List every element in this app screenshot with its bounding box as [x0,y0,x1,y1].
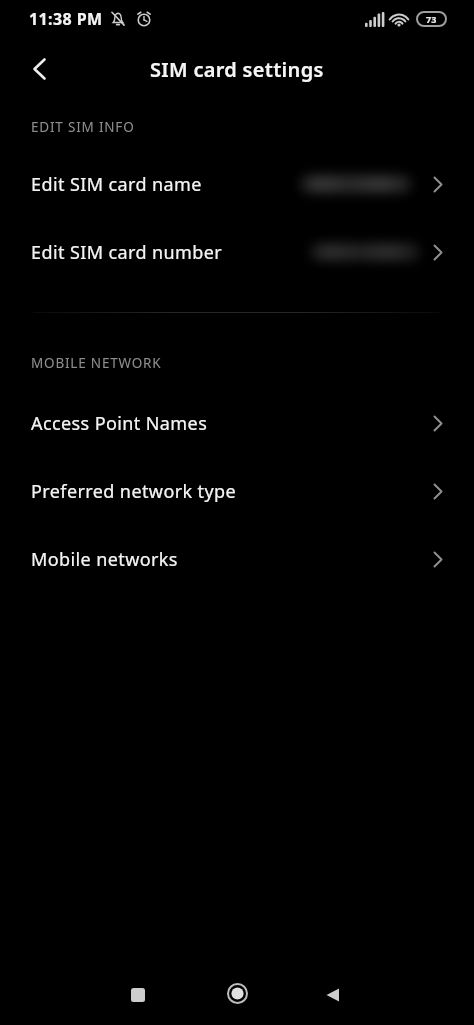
button[interactable] [24,54,54,84]
staticText: Preferred network type [31,479,237,504]
button[interactable]: Edit SIM card number [0,218,474,286]
staticText: SIM card settings [150,56,324,83]
staticText: MOBILE NETWORK [31,354,162,372]
staticText: 11:38 PM [29,8,103,30]
button[interactable]: Mobile networks [0,525,474,593]
button[interactable]: Preferred network type [0,457,474,525]
button[interactable] [217,973,257,1013]
staticText: EDIT SIM INFO [31,118,135,136]
button[interactable] [118,975,158,1015]
button[interactable]: Access Point Names [0,389,474,457]
staticText: Edit SIM card name [31,172,202,197]
button[interactable] [313,975,353,1015]
staticText: 73 [426,13,437,25]
button[interactable]: Edit SIM card name [0,150,474,218]
staticText: Mobile networks [31,547,178,572]
staticText: Access Point Names [31,411,208,436]
staticText: Edit SIM card number [31,240,223,265]
